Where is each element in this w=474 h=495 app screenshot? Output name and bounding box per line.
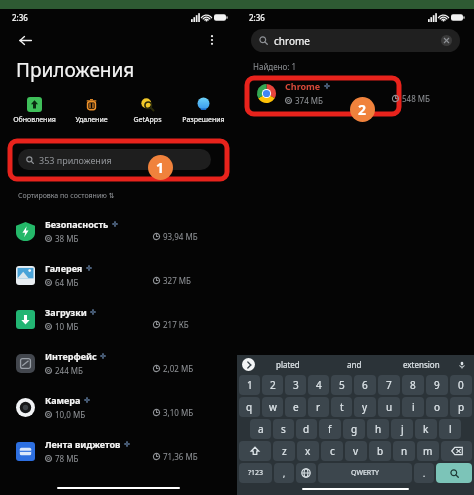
button[interactable]: c: [321, 441, 343, 461]
button[interactable]: 3: [285, 375, 306, 395]
button[interactable]: e: [285, 397, 306, 417]
button[interactable]: Назад: [12, 27, 38, 53]
button[interactable]: k: [415, 419, 437, 439]
button[interactable]: ,: [274, 463, 294, 483]
button[interactable]: p: [450, 397, 472, 417]
button[interactable]: j: [391, 419, 413, 439]
button[interactable]: and: [321, 355, 388, 374]
button[interactable]: 4: [308, 375, 329, 395]
button[interactable]: t: [331, 397, 352, 417]
staticText: e: [293, 400, 299, 414]
button[interactable]: u: [378, 397, 400, 417]
button[interactable]: i: [402, 397, 424, 417]
button[interactable]: 2: [262, 375, 283, 395]
staticText: v: [353, 444, 359, 458]
button[interactable]: Chrome: [237, 76, 474, 110]
button[interactable]: d: [296, 419, 317, 439]
staticText: 9: [434, 378, 440, 392]
button[interactable]: s: [273, 419, 294, 439]
button[interactable]: 8: [402, 375, 424, 395]
button[interactable]: n: [393, 441, 415, 461]
button[interactable]: 0: [450, 375, 472, 395]
staticText: s: [281, 422, 286, 436]
button[interactable]: 7: [378, 375, 400, 395]
button[interactable]: 1: [239, 375, 260, 395]
button[interactable]: QWERTY: [318, 463, 412, 483]
staticText: 64 МБ: [55, 277, 79, 288]
button[interactable]: 9: [426, 375, 448, 395]
button[interactable]: Ещё: [199, 27, 225, 53]
button[interactable]: 353 приложения: [18, 149, 211, 170]
button[interactable]: b: [369, 441, 391, 461]
button[interactable]: Backspace: [441, 441, 472, 461]
staticText: 1: [156, 158, 165, 177]
button[interactable]: ?123: [239, 463, 272, 483]
staticText: 7: [386, 378, 392, 392]
button[interactable]: m: [417, 441, 439, 461]
button[interactable]: h: [367, 419, 389, 439]
staticText: Разрешения: [182, 115, 225, 125]
button[interactable]: Голосовой ввод: [455, 355, 469, 374]
staticText: 71,36 МБ: [163, 451, 198, 462]
button[interactable]: GetApps: [119, 95, 175, 127]
staticText: 548 МБ: [402, 93, 430, 104]
button[interactable]: Обновления: [6, 95, 63, 127]
staticText: 8: [410, 378, 416, 392]
staticText: 0: [458, 378, 464, 392]
button[interactable]: r: [308, 397, 329, 417]
button[interactable]: Больше: [242, 358, 255, 371]
button[interactable]: Лента виджетов: [0, 429, 237, 473]
staticText: 10 МБ: [55, 321, 79, 332]
button[interactable]: Камера: [0, 385, 237, 429]
staticText: x: [305, 444, 311, 458]
staticText: d: [303, 422, 310, 436]
button[interactable]: 6: [354, 375, 376, 395]
staticText: Галерея: [45, 262, 83, 274]
button[interactable]: Загрузки: [0, 297, 237, 341]
button[interactable]: 5: [331, 375, 352, 395]
button[interactable]: .: [414, 463, 434, 483]
button[interactable]: Разрешения: [175, 95, 231, 127]
staticText: QWERTY: [351, 468, 380, 478]
button[interactable]: l: [439, 419, 461, 439]
button[interactable]: g: [343, 419, 365, 439]
button[interactable]: Интерфейс: [0, 341, 237, 385]
button[interactable]: x: [297, 441, 319, 461]
staticText: o: [434, 400, 441, 414]
staticText: l: [449, 422, 452, 436]
staticText: k: [423, 422, 429, 436]
button[interactable]: chrome: [251, 29, 460, 52]
staticText: 374 МБ: [295, 95, 323, 106]
staticText: 2:36: [249, 12, 265, 23]
staticText: u: [386, 400, 393, 414]
staticText: 2: [270, 378, 276, 392]
button[interactable]: plated: [255, 355, 321, 374]
button[interactable]: Shift: [239, 441, 271, 461]
staticText: 5: [339, 378, 345, 392]
staticText: q: [246, 400, 253, 414]
staticText: Найдено: 1: [253, 61, 297, 72]
staticText: b: [377, 444, 384, 458]
button[interactable]: w: [262, 397, 283, 417]
staticText: r: [316, 400, 321, 414]
button[interactable]: Сменить язык: [296, 463, 316, 483]
button[interactable]: extension: [388, 355, 455, 374]
staticText: p: [458, 400, 465, 414]
staticText: 6: [362, 378, 368, 392]
button[interactable]: z: [273, 441, 295, 461]
button[interactable]: Поиск: [436, 463, 472, 483]
button[interactable]: a: [250, 419, 271, 439]
button[interactable]: f: [319, 419, 341, 439]
staticText: .: [423, 468, 426, 479]
button[interactable]: Безопасность: [0, 209, 237, 253]
button[interactable]: Очистить: [441, 35, 452, 46]
button[interactable]: o: [426, 397, 448, 417]
staticText: 2:36: [12, 12, 28, 23]
button[interactable]: Удаление: [63, 95, 119, 127]
staticText: t: [340, 400, 344, 414]
staticText: h: [375, 422, 382, 436]
button[interactable]: q: [239, 397, 260, 417]
button[interactable]: Галерея: [0, 253, 237, 297]
button[interactable]: v: [345, 441, 367, 461]
button[interactable]: y: [354, 397, 376, 417]
